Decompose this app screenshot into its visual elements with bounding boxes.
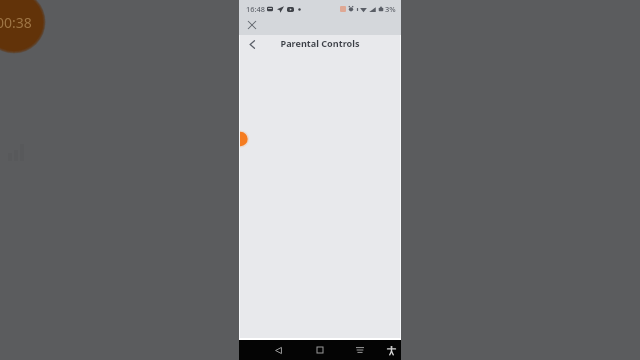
button[interactable]: Accessibility <box>384 343 398 357</box>
staticText: 16:48 <box>246 4 265 14</box>
button[interactable]: Close <box>244 17 259 32</box>
button[interactable]: Navigate up <box>244 36 260 52</box>
button[interactable]: Back <box>271 343 285 357</box>
button[interactable]: Recent apps <box>353 343 367 357</box>
button[interactable]: Home <box>313 343 327 357</box>
staticText: Parental Controls <box>280 37 360 49</box>
staticText: 3% <box>385 4 396 14</box>
staticText: 00:38 <box>0 13 32 32</box>
